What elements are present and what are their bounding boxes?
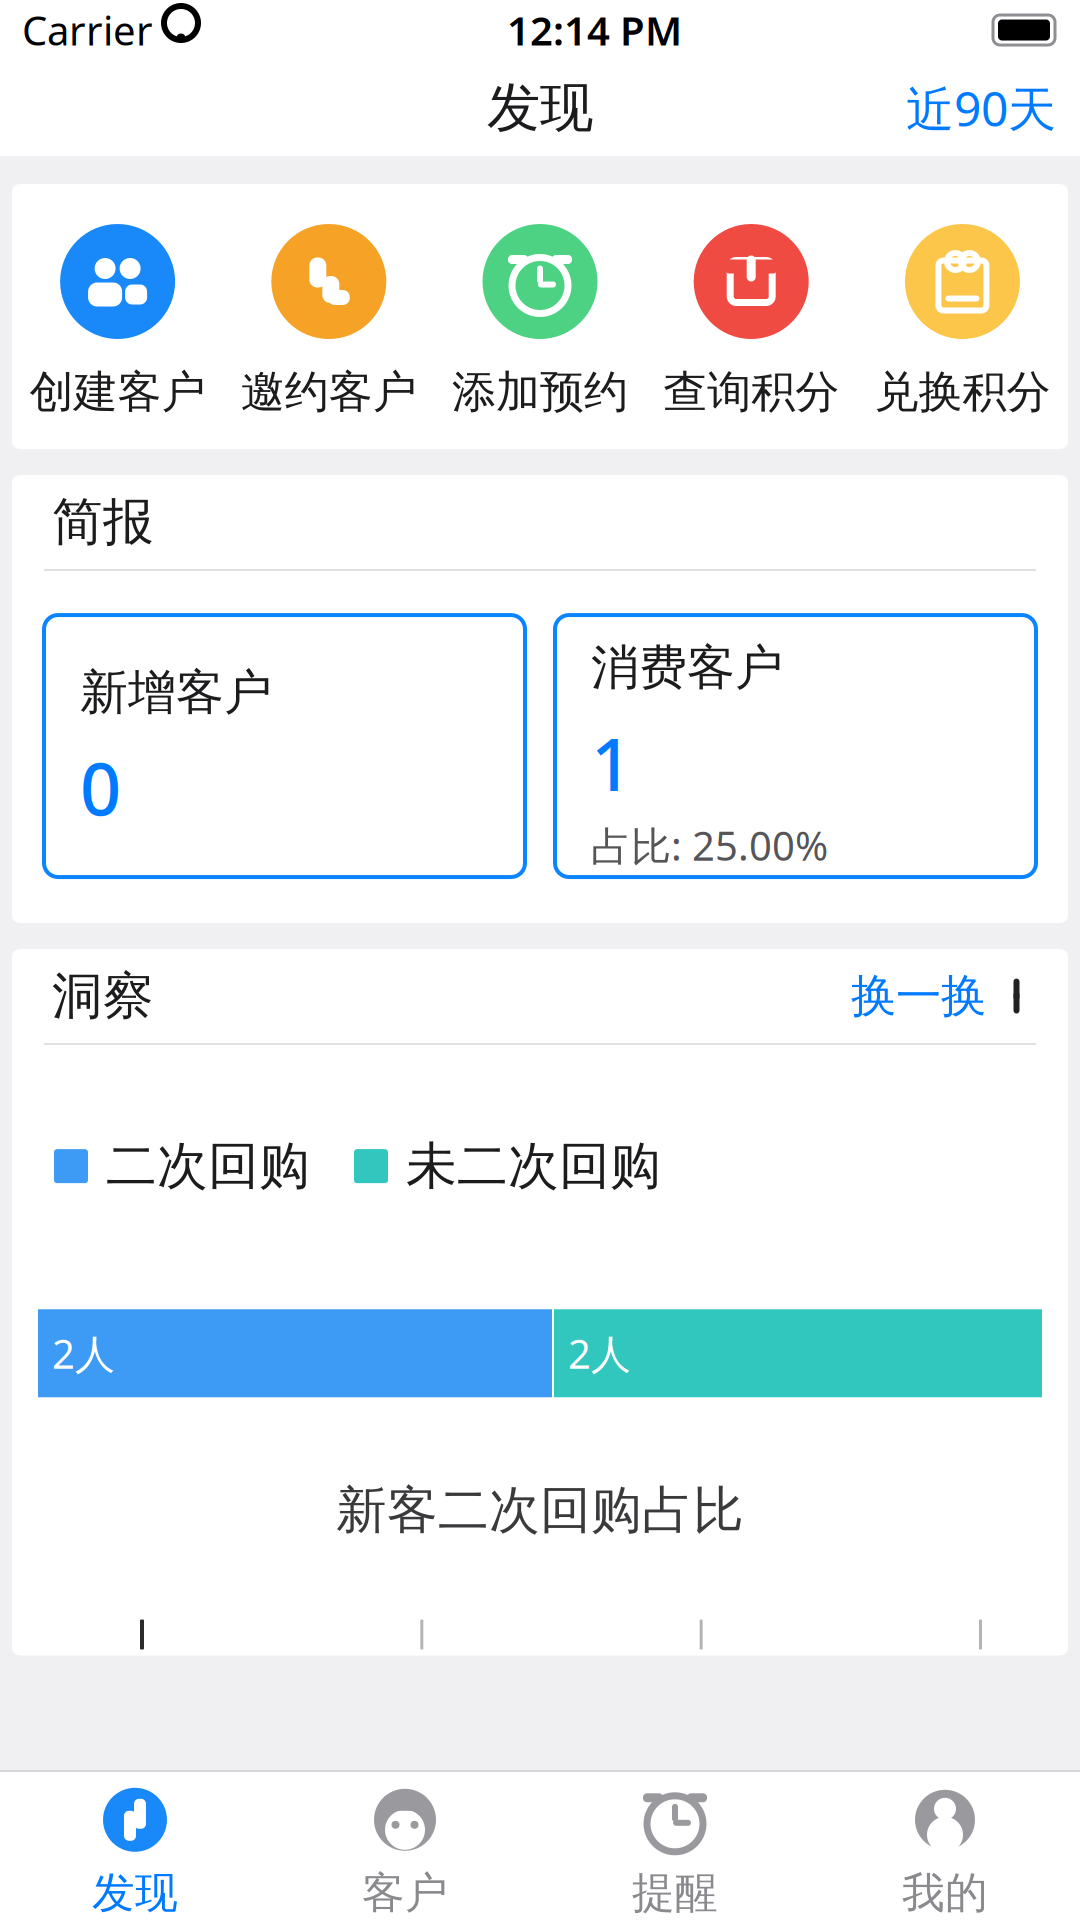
staticText: 消费客户 (591, 638, 783, 697)
button[interactable]: 提醒 (540, 1773, 810, 1919)
staticText: Carrier (22, 3, 153, 56)
staticText: 添加预约 (452, 365, 628, 419)
staticText: 二次回购 (106, 1135, 310, 1197)
staticText: 2人 (52, 1327, 115, 1380)
staticText: 我的 (902, 1867, 988, 1919)
staticText: 1 (591, 715, 632, 811)
button[interactable]: 消费客户 (555, 615, 1036, 877)
staticText: 0 (80, 740, 121, 836)
staticText: 邀约客户 (241, 365, 417, 419)
button[interactable]: 客户 (270, 1773, 540, 1919)
button[interactable]: 查询积分 (646, 224, 857, 419)
staticText: 新客二次回购占比 (336, 1479, 744, 1541)
staticText: 近90天 (906, 76, 1056, 140)
staticText: 2人 (568, 1327, 631, 1380)
button[interactable]: 创建客户 (12, 224, 223, 419)
button[interactable]: 近90天 (882, 62, 1080, 154)
staticText: 换一换 (851, 968, 986, 1024)
staticText: 创建客户 (30, 365, 206, 419)
button[interactable]: 我的 (810, 1773, 1080, 1919)
staticText: 兑换积分 (874, 365, 1050, 419)
staticText: 发现 (92, 1867, 178, 1919)
button[interactable]: 添加预约 (434, 224, 646, 419)
staticText: 占比: 25.00% (591, 819, 828, 872)
staticText: 提醒 (632, 1867, 718, 1919)
staticText: 洞察 (52, 965, 154, 1027)
button[interactable]: 新增客户 (44, 615, 525, 877)
button[interactable]: 邀约客户 (223, 224, 434, 419)
button[interactable]: 换一换 (851, 960, 1028, 1032)
staticText: 12:14 PM (507, 3, 682, 56)
staticText: 客户 (362, 1867, 448, 1919)
staticText: 未二次回购 (406, 1135, 661, 1197)
staticText: 发现 (487, 75, 593, 141)
staticText: 新增客户 (80, 663, 272, 722)
staticText: 简报 (52, 491, 154, 553)
button[interactable]: 发现 (0, 1773, 270, 1919)
button[interactable]: 兑换积分 (857, 224, 1068, 419)
staticText: 查询积分 (663, 365, 839, 419)
